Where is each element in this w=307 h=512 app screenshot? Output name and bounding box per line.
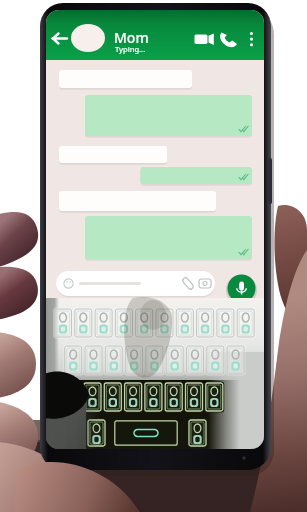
button[interactable]: Video call — [192, 27, 216, 51]
button[interactable] — [56, 271, 215, 296]
button[interactable] — [71, 20, 161, 52]
staticText: Mom — [114, 28, 149, 47]
button[interactable]: Record voice message — [227, 274, 256, 303]
button[interactable]: More options — [243, 27, 261, 51]
staticText: Typing... — [115, 44, 146, 54]
button[interactable]: Back — [48, 26, 74, 50]
button[interactable]: Voice call — [218, 27, 240, 51]
